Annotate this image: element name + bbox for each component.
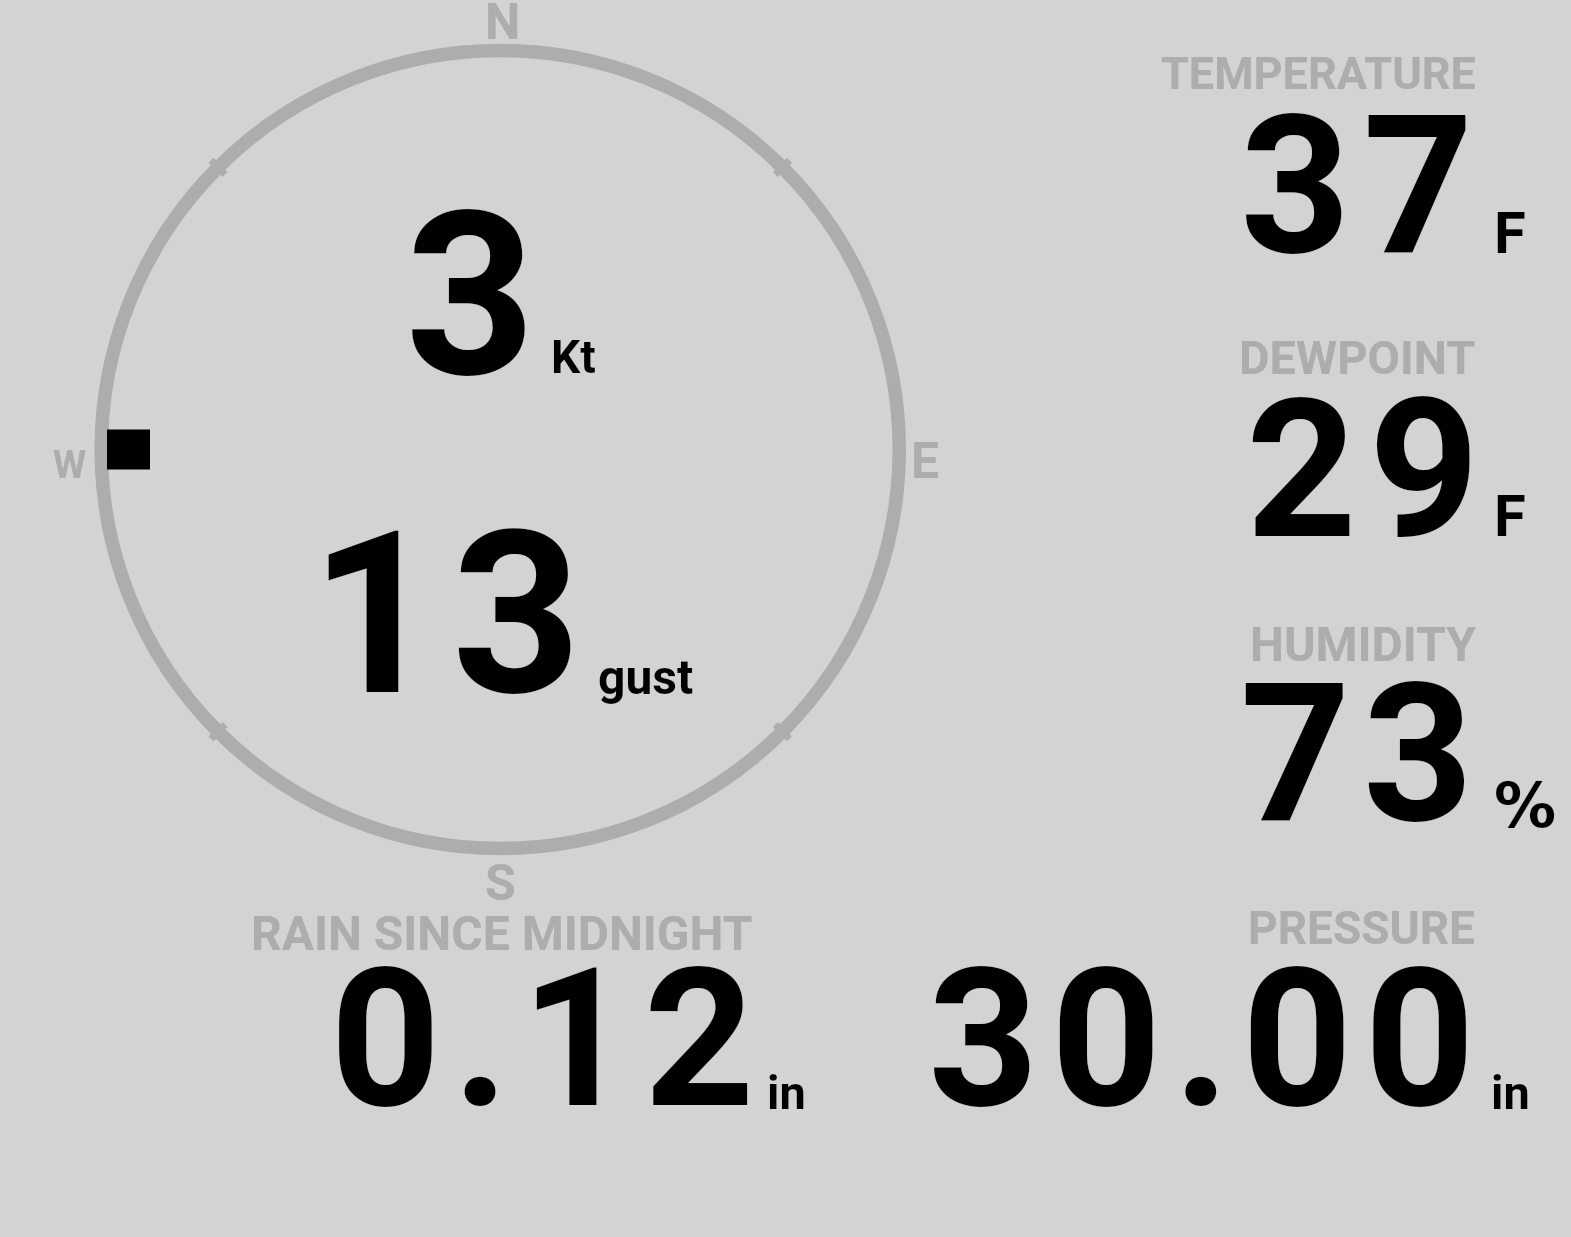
staticText: DEWPOINT: [1239, 330, 1476, 385]
staticText: TEMPERATURE: [1161, 47, 1476, 100]
button[interactable]: Humidity 73 percent: [1000, 585, 1560, 860]
button[interactable]: Temperature 37 F: [1000, 20, 1560, 290]
staticText: gust: [598, 649, 694, 705]
button[interactable]: Dewpoint 29 F: [1000, 300, 1560, 575]
staticText: in: [1491, 1065, 1530, 1120]
staticText: 13: [310, 482, 594, 747]
staticText: Kt: [551, 330, 596, 384]
staticText: 37: [1240, 73, 1486, 299]
staticText: HUMIDITY: [1250, 616, 1476, 672]
staticText: N: [485, 0, 521, 52]
staticText: in: [767, 1065, 806, 1120]
staticText: 0.12: [330, 926, 767, 1152]
staticText: RAIN SINCE MIDNIGHT: [251, 905, 753, 961]
staticText: 73: [1240, 641, 1486, 867]
staticText: E: [911, 432, 940, 491]
staticText: %: [1494, 769, 1557, 841]
staticText: PRESSURE: [1248, 901, 1475, 955]
staticText: F: [1494, 199, 1526, 267]
staticText: 3: [405, 162, 548, 429]
staticText: 30.00: [928, 926, 1488, 1152]
button[interactable]: Rain since midnight 0.12 in: [230, 895, 790, 1125]
button[interactable]: Pressure 30.00 in: [880, 895, 1560, 1125]
staticText: F: [1494, 482, 1526, 550]
staticText: W: [53, 443, 87, 488]
button[interactable]: Wind speed and direction: [20, 0, 980, 910]
staticText: S: [485, 854, 516, 913]
staticText: 29: [1246, 357, 1492, 583]
